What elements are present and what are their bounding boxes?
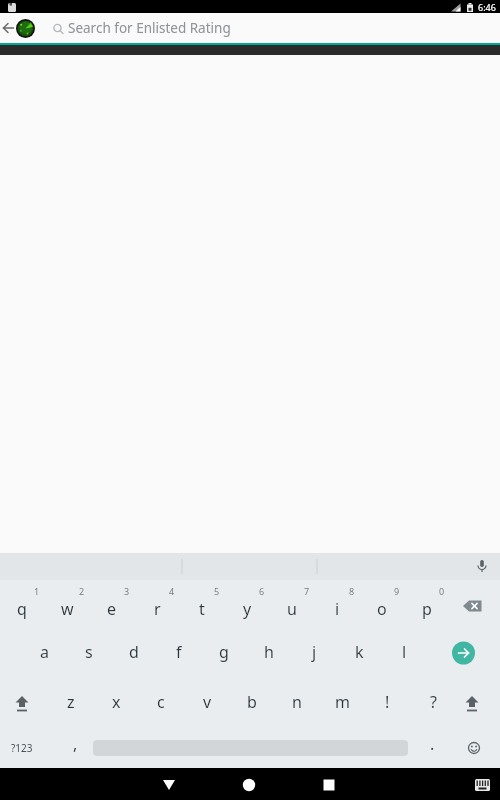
button[interactable]: c [141, 687, 181, 717]
button[interactable]: ! [367, 687, 407, 717]
staticText: r [154, 598, 161, 620]
staticText: p [422, 598, 432, 620]
staticText: 6 [259, 585, 265, 597]
staticText: u [287, 598, 297, 620]
button[interactable]: ? [413, 687, 453, 717]
button[interactable] [470, 554, 495, 579]
button[interactable] [4, 690, 40, 716]
button[interactable]: g [204, 637, 244, 667]
staticText: . [430, 733, 435, 755]
button[interactable] [229, 768, 269, 800]
button[interactable]: , [55, 729, 95, 759]
button[interactable] [93, 736, 408, 760]
staticText: w [61, 598, 74, 620]
button[interactable]: t [182, 594, 222, 624]
staticText: , [73, 733, 78, 755]
staticText: m [335, 691, 350, 713]
staticText: q [17, 598, 27, 620]
staticText: z [67, 691, 75, 713]
button[interactable]: n [277, 687, 317, 717]
button[interactable]: v [187, 687, 227, 717]
staticText: i [335, 598, 340, 620]
button[interactable]: Search for Enlisted Rating [0, 13, 500, 43]
staticText: v [203, 691, 212, 713]
button[interactable]: m [322, 687, 362, 717]
button[interactable] [309, 768, 349, 800]
button[interactable]: z [51, 687, 91, 717]
staticText: k [355, 641, 364, 663]
staticText: ! [385, 691, 390, 713]
staticText: n [292, 691, 302, 713]
button[interactable] [455, 596, 495, 622]
button[interactable]: . [412, 729, 452, 759]
staticText: 5 [214, 585, 220, 597]
staticText: a [40, 641, 49, 663]
staticText: j [312, 641, 317, 663]
button[interactable] [470, 772, 496, 796]
staticText: o [377, 598, 387, 620]
staticText: d [129, 641, 139, 663]
button[interactable]: u [272, 594, 312, 624]
button[interactable]: b [232, 687, 272, 717]
staticText: b [247, 691, 257, 713]
staticText: l [402, 641, 407, 663]
button[interactable]: i [317, 594, 357, 624]
button[interactable]: x [96, 687, 136, 717]
button[interactable]: a [24, 637, 64, 667]
button[interactable]: q [2, 594, 42, 624]
staticText: c [157, 691, 165, 713]
button[interactable]: f [159, 637, 199, 667]
staticText: 1 [34, 585, 40, 597]
staticText: 0 [439, 585, 445, 597]
button[interactable]: h [249, 637, 289, 667]
button[interactable] [454, 690, 490, 716]
button[interactable]: ?123 [4, 735, 40, 761]
staticText: 6:46 [478, 1, 496, 13]
staticText: ?123 [11, 741, 33, 755]
staticText: y [243, 598, 252, 620]
button[interactable]: k [339, 637, 379, 667]
button[interactable]: s [69, 637, 109, 667]
staticText: e [107, 598, 117, 620]
staticText: 3 [124, 585, 130, 597]
button[interactable] [449, 639, 479, 667]
button[interactable]: d [114, 637, 154, 667]
staticText: f [176, 641, 182, 663]
button[interactable]: r [137, 594, 177, 624]
staticText: 8 [349, 585, 355, 597]
button[interactable]: e [92, 594, 132, 624]
staticText: Search for Enlisted Rating [68, 19, 231, 37]
button[interactable]: y [227, 594, 267, 624]
staticText: 4 [169, 585, 175, 597]
staticText: ? [430, 691, 437, 713]
button[interactable] [149, 768, 189, 800]
staticText: 2 [79, 585, 85, 597]
staticText: 9 [394, 585, 400, 597]
staticText: t [199, 598, 205, 620]
staticText: x [112, 691, 121, 713]
button[interactable]: o [362, 594, 402, 624]
button[interactable]: l [384, 637, 424, 667]
staticText: s [85, 641, 93, 663]
button[interactable] [0, 20, 17, 36]
staticText: 7 [304, 585, 310, 597]
button[interactable]: w [47, 594, 87, 624]
staticText: g [219, 641, 229, 663]
staticText: h [264, 641, 274, 663]
button[interactable] [458, 735, 490, 761]
button[interactable]: j [294, 637, 334, 667]
button[interactable]: p [407, 594, 447, 624]
